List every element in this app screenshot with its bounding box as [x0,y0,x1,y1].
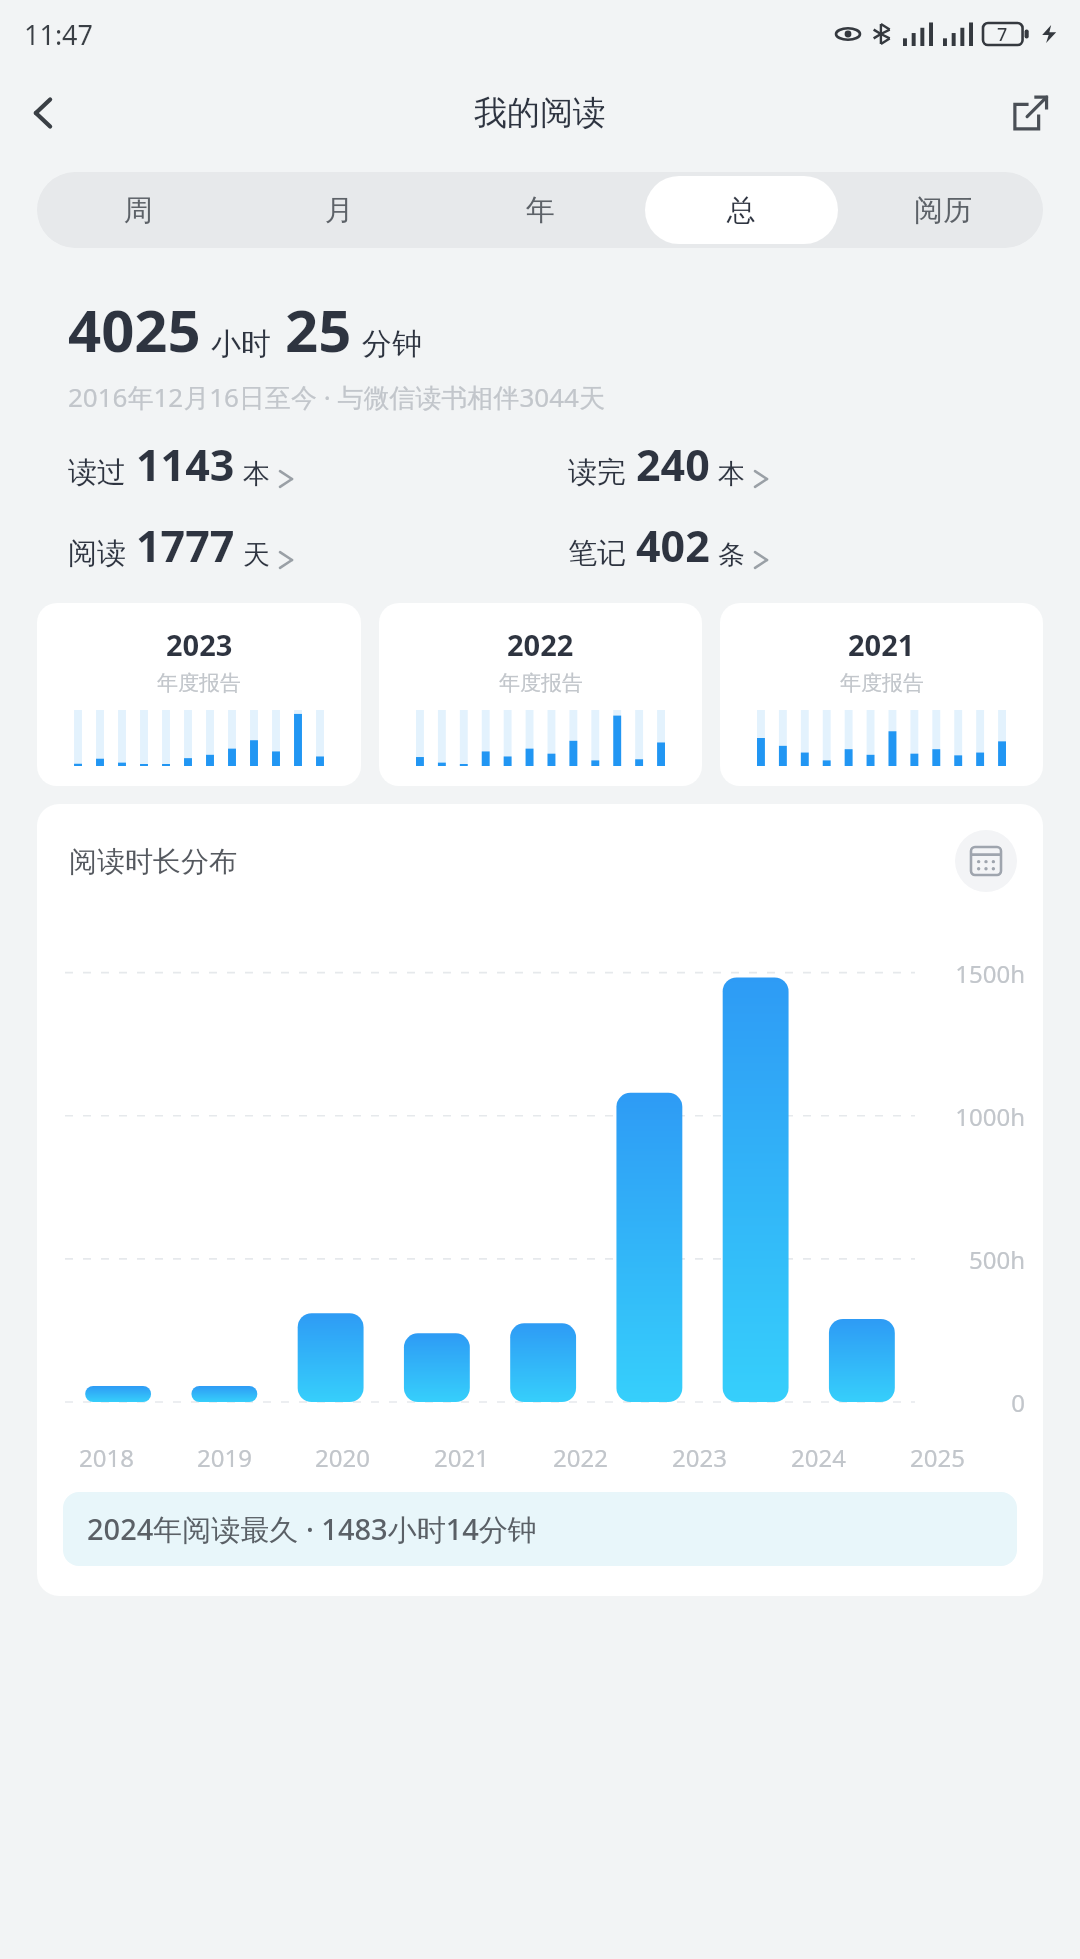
staticText: 2023 [166,625,233,664]
staticText: 天 [243,538,270,572]
staticText: 年 [526,192,555,229]
button[interactable]: 阅历 [846,176,1039,244]
staticText: 本 [718,457,745,491]
staticText: 阅读时长分布 [69,844,237,879]
staticText: 25 [285,290,352,369]
staticText: 年度报告 [499,670,583,696]
staticText: 2024 [791,1441,846,1474]
staticText: 1143 [136,435,235,494]
staticText: 总 [727,192,756,229]
staticText: 7 [997,22,1008,47]
button[interactable]: 年 [444,176,637,244]
staticText: 我的阅读 [474,92,606,134]
button[interactable]: 2021 [720,603,1043,786]
button[interactable]: 月 [243,176,436,244]
staticText: 2025 [910,1441,965,1474]
staticText: 0 [1011,1386,1025,1419]
staticText: 1000h [955,1100,1025,1133]
staticText: 年度报告 [840,670,924,696]
button[interactable]: 2023 [37,603,361,786]
staticText: 分钟 [362,325,422,363]
staticText: 阅历 [914,192,972,229]
staticText: 1500h [955,957,1025,990]
staticText: 读过 [68,454,126,491]
button[interactable]: 总 [645,176,838,244]
staticText: 条 [718,538,745,572]
button[interactable]: Share [998,81,1062,145]
button[interactable]: 阅读 [68,516,540,575]
staticText: 240 [636,435,710,494]
button[interactable]: 2024年阅读最久 · 1483小时14分钟 [63,1492,1017,1566]
staticText: 1777 [136,516,235,575]
staticText: 小时 [211,325,271,363]
staticText: 阅读 [68,535,126,572]
staticText: 2016年12月16日至今 · 与微信读书相伴3044天 [68,379,605,415]
button[interactable]: 读完 [568,435,1080,494]
staticText: 11:47 [24,16,94,53]
button[interactable]: Calendar [955,830,1017,892]
staticText: 2018 [79,1441,134,1474]
staticText: 4025 [68,290,201,369]
staticText: 读完 [568,454,626,491]
staticText: 2022 [507,625,574,664]
staticText: 2021 [434,1441,489,1474]
staticText: 月 [325,192,354,229]
staticText: 年度报告 [157,670,241,696]
staticText: 笔记 [568,535,626,572]
staticText: 402 [636,516,710,575]
staticText: 本 [243,457,270,491]
staticText: 500h [968,1243,1025,1276]
staticText: 2024年阅读最久 · 1483小时14分钟 [87,1509,537,1549]
staticText: 2023 [672,1441,727,1474]
staticText: 2019 [197,1441,252,1474]
staticText: 周 [124,192,153,229]
button[interactable]: 读过 [68,435,540,494]
staticText: 2020 [315,1441,370,1474]
button[interactable]: 周 [41,176,235,244]
button[interactable]: Back [12,81,76,145]
button[interactable]: 2022 [379,603,702,786]
button[interactable]: 笔记 [568,516,1080,575]
staticText: 2022 [553,1441,608,1474]
staticText: 2021 [848,625,915,664]
